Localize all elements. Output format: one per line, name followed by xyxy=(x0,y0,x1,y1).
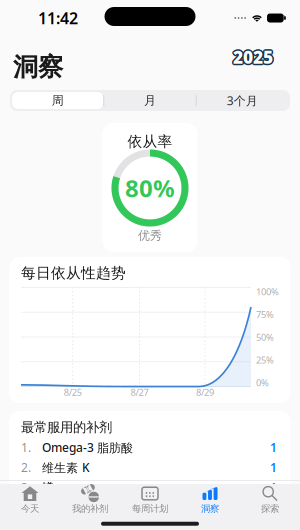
staticText: 优秀 xyxy=(138,228,162,243)
staticText: 今天 xyxy=(21,503,39,514)
staticText: 75% xyxy=(256,308,274,320)
button[interactable]: 3个月 xyxy=(197,92,288,109)
staticText: 最常服用的补剂 xyxy=(21,419,112,435)
staticText: 2025 xyxy=(234,47,274,70)
staticText: 1. xyxy=(21,439,31,455)
staticText: 2. xyxy=(21,459,31,475)
staticText: 50% xyxy=(256,331,274,343)
button[interactable]: 2. xyxy=(9,457,291,477)
staticText: 8/29 xyxy=(196,386,214,398)
staticText: 2025 xyxy=(232,47,272,70)
staticText: 25% xyxy=(256,354,274,366)
staticText: 探索 xyxy=(261,503,279,514)
staticText: 月 xyxy=(144,93,156,108)
button[interactable]: 月 xyxy=(104,92,196,109)
staticText: 我的补剂 xyxy=(72,503,108,514)
staticText: 3. xyxy=(21,479,31,495)
button[interactable]: 每周计划 xyxy=(120,480,180,514)
staticText: 0% xyxy=(256,376,269,389)
staticText: 依从率 xyxy=(127,132,172,150)
staticText: 80% xyxy=(125,172,175,204)
staticText: 镁 xyxy=(42,480,54,495)
staticText: 100% xyxy=(256,285,279,298)
staticText: 2025 xyxy=(233,45,273,68)
button[interactable]: 我的补剂 xyxy=(60,480,120,514)
staticText: 洞察 xyxy=(201,503,219,514)
staticText: 3个月 xyxy=(227,92,258,108)
staticText: 洞察 xyxy=(13,51,63,82)
staticText: 周 xyxy=(52,93,64,108)
staticText: 1 xyxy=(270,459,277,475)
button[interactable]: 探索 xyxy=(240,480,300,514)
button[interactable]: 3. xyxy=(9,477,291,497)
staticText: 每日依从性趋势 xyxy=(21,264,126,282)
staticText: 1 xyxy=(270,479,277,495)
staticText: 8/25 xyxy=(64,386,82,398)
button[interactable]: 洞察 xyxy=(180,480,240,514)
staticText: 8/27 xyxy=(130,386,148,398)
staticText: 1 xyxy=(270,439,277,455)
button[interactable]: 1. xyxy=(9,437,291,457)
staticText: 2025 xyxy=(234,45,274,68)
staticText: 维生素 K xyxy=(42,459,90,475)
staticText: 2025 xyxy=(233,47,273,70)
staticText: 2025 xyxy=(234,44,274,67)
button[interactable]: 2025 xyxy=(233,48,287,86)
staticText: 2025 xyxy=(232,44,272,67)
staticText: 每周计划 xyxy=(132,503,168,514)
button[interactable]: 周 xyxy=(12,92,103,109)
staticText: Omega-3 脂肪酸 xyxy=(42,439,133,455)
staticText: 2025 xyxy=(233,44,273,67)
staticText: 2025 xyxy=(231,45,271,68)
button[interactable]: 今天 xyxy=(0,480,60,514)
staticText: 11:42 xyxy=(38,7,78,29)
